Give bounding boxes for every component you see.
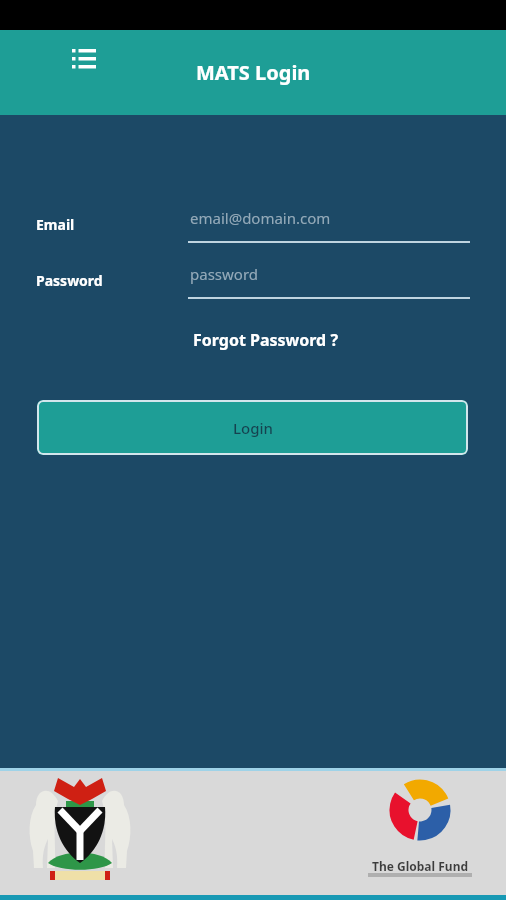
staticText: email@domain.com xyxy=(190,208,331,228)
staticText: password xyxy=(190,264,258,284)
button[interactable]: password xyxy=(188,251,470,299)
staticText: Forgot Password ? xyxy=(193,329,339,351)
button[interactable]: Login xyxy=(37,400,468,455)
button[interactable]: Forgot Password ? xyxy=(186,325,346,355)
staticText: The Global Fund xyxy=(372,858,469,874)
staticText: Login xyxy=(233,418,273,438)
button[interactable] xyxy=(66,40,102,76)
staticText: Email xyxy=(36,215,75,234)
button[interactable]: email@domain.com xyxy=(188,195,470,243)
staticText: MATS Login xyxy=(196,59,311,86)
staticText: Password xyxy=(36,271,103,290)
